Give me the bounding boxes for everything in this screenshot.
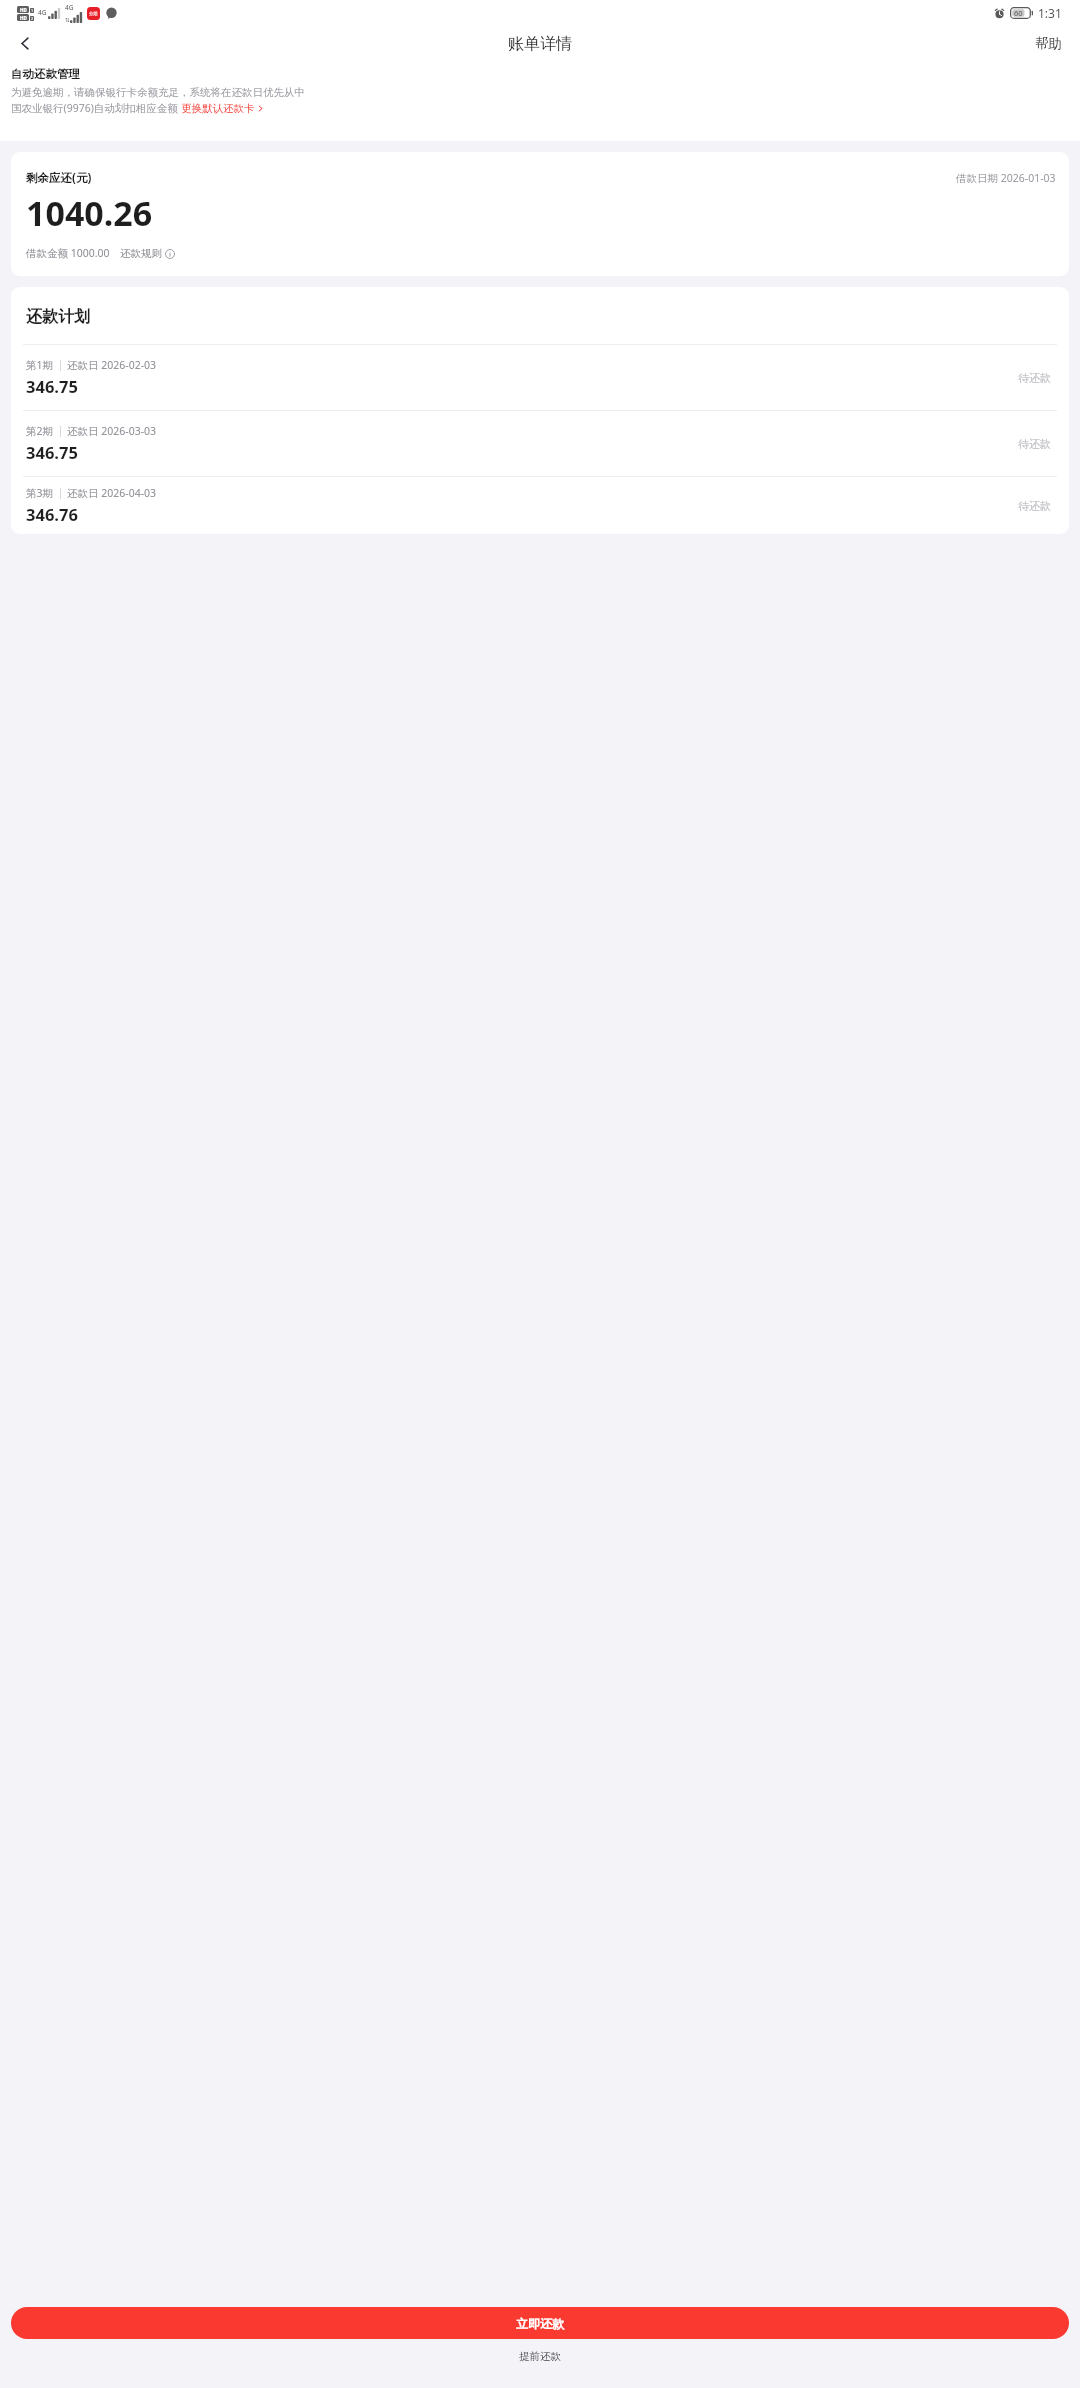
staticText: 346.76 — [26, 503, 78, 525]
staticText: 待还款 — [1018, 437, 1051, 451]
staticText: 剩余应还(元) — [26, 170, 92, 186]
staticText: 2 — [31, 16, 34, 21]
staticText: 还款计划 — [26, 307, 90, 327]
staticText: 4G — [65, 3, 74, 12]
staticText: 国农业银行(9976)自动划扣相应金额 — [11, 101, 181, 115]
staticText: 346.75 — [26, 375, 78, 397]
staticText: 借款日期 2026-01-03 — [956, 171, 1056, 185]
button[interactable]: 剩余应还(元) — [11, 152, 1069, 276]
button[interactable]: 更换默认还款卡 — [181, 102, 264, 115]
button[interactable]: 提前还款 — [509, 2347, 571, 2366]
button[interactable]: 返回 — [9, 27, 42, 60]
staticText: 还款日 2026-04-03 — [67, 486, 157, 500]
staticText: 还款日 2026-02-03 — [67, 358, 157, 372]
button[interactable]: 还款规则 — [120, 247, 175, 260]
staticText: 自动还款管理 — [11, 67, 80, 81]
button[interactable]: 第3期 — [11, 477, 1069, 534]
staticText: 1 — [31, 8, 34, 13]
button[interactable]: 立即还款 — [11, 2307, 1069, 2339]
staticText: 待还款 — [1018, 499, 1051, 513]
staticText: 为避免逾期，请确保银行卡余额充足，系统将在还款日优先从中 — [11, 86, 305, 99]
staticText: 账单详情 — [508, 34, 572, 54]
staticText: 346.75 — [26, 441, 78, 463]
staticText: 还款日 2026-03-03 — [67, 424, 157, 438]
staticText: 第2期 — [26, 424, 54, 438]
staticText: 60 — [1014, 8, 1023, 18]
staticText: HD — [20, 15, 27, 21]
staticText: 借款金额 1000.00 — [26, 246, 110, 260]
staticText: 提前还款 — [519, 2350, 561, 2363]
button[interactable]: 第1期 — [11, 345, 1069, 410]
staticText: 还款规则 — [120, 247, 162, 260]
button[interactable]: 第2期 — [11, 411, 1069, 476]
staticText: 更换默认还款卡 — [181, 102, 255, 115]
staticText: ⇅ — [65, 17, 70, 23]
staticText: 立即还款 — [516, 2316, 564, 2331]
staticText: 1:31 — [1038, 5, 1062, 21]
staticText: 帮助 — [1035, 35, 1062, 52]
staticText: 待还款 — [1018, 371, 1051, 385]
staticText: 第1期 — [26, 358, 54, 372]
staticText: HD — [20, 7, 27, 13]
staticText: 1040.26 — [26, 190, 153, 236]
button[interactable]: 帮助 — [1029, 30, 1068, 57]
staticText: 第3期 — [26, 486, 54, 500]
staticText: 分期 — [89, 11, 98, 16]
staticText: 4G — [38, 8, 47, 17]
